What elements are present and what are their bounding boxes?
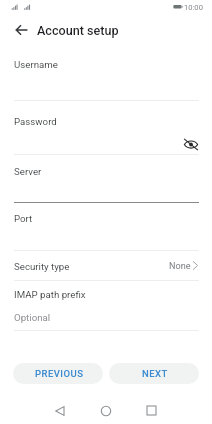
staticText: Port [14,213,33,224]
button[interactable]: NEXT [109,363,199,384]
button[interactable]: IMAP path prefix [0,280,212,331]
staticText: Security type [14,261,70,272]
staticText: Username [14,59,58,70]
button[interactable]: Navigate up [7,16,36,44]
staticText: Server [14,166,42,177]
button[interactable]: Show password [180,133,202,155]
button[interactable]: Username [0,52,212,101]
button[interactable]: Recent apps [137,397,165,424]
staticText: Account setup [37,23,119,38]
button[interactable]: Port [0,202,212,251]
staticText: Password [14,116,57,127]
staticText: None [169,261,191,272]
button[interactable]: PREVIOUS [13,363,103,384]
staticText: Optional [14,312,51,323]
button[interactable]: Back [46,397,74,424]
staticText: NEXT [142,368,168,379]
button[interactable]: Server [0,154,212,203]
button[interactable]: Security type [0,220,212,281]
staticText: IMAP path prefix [14,289,86,300]
button[interactable]: Home [92,397,120,424]
button[interactable]: Password [0,106,212,155]
staticText: 10:00 [184,3,203,12]
staticText: PREVIOUS [35,368,84,379]
